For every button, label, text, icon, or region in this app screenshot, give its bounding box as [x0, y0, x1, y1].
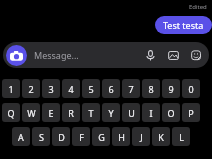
button[interactable]: 8 [142, 79, 160, 98]
button[interactable]: S [32, 127, 50, 146]
button[interactable]: Test testa [155, 16, 212, 34]
button[interactable]: Q [2, 103, 20, 122]
staticText: W [27, 107, 36, 119]
button[interactable]: D [52, 127, 70, 146]
button[interactable]: Voice message [142, 47, 158, 63]
staticText: 2 [28, 83, 34, 95]
staticText: 1 [8, 83, 14, 95]
button[interactable]: O [162, 103, 180, 122]
staticText: D [58, 131, 65, 143]
staticText: 3 [48, 83, 54, 95]
staticText: L [179, 131, 184, 143]
staticText: A [18, 131, 24, 143]
staticText: Q [7, 107, 15, 119]
staticText: P [188, 107, 194, 119]
staticText: 4 [68, 83, 74, 95]
button[interactable]: 2 [22, 79, 40, 98]
button[interactable]: 1 [2, 79, 20, 98]
button[interactable]: P [182, 103, 200, 122]
staticText: 0 [188, 83, 194, 95]
staticText: Edited [189, 3, 207, 11]
button[interactable]: F [72, 127, 90, 146]
button[interactable]: I [142, 103, 160, 122]
button[interactable]: E [42, 103, 60, 122]
staticText: Message... [34, 49, 79, 61]
button[interactable]: Insert image [165, 47, 181, 63]
button[interactable]: G [92, 127, 110, 146]
button[interactable]: L [172, 127, 190, 146]
button[interactable]: 5 [82, 79, 100, 98]
staticText: G [98, 131, 105, 143]
staticText: H [118, 131, 125, 143]
staticText: J [140, 131, 143, 143]
button[interactable]: 4 [62, 79, 80, 98]
button[interactable]: 3 [42, 79, 60, 98]
button[interactable]: 6 [102, 79, 120, 98]
button[interactable]: H [112, 127, 130, 146]
staticText: 6 [108, 83, 114, 95]
staticText: U [128, 107, 135, 119]
staticText: K [158, 131, 164, 143]
button[interactable]: A [12, 127, 30, 146]
button[interactable]: W [22, 103, 40, 122]
staticText: S [39, 131, 44, 143]
staticText: 9 [168, 83, 174, 95]
staticText: T [88, 107, 94, 119]
staticText: Y [108, 107, 114, 119]
button[interactable]: J [132, 127, 150, 146]
staticText: R [68, 107, 74, 119]
button[interactable]: 9 [162, 79, 180, 98]
staticText: E [48, 107, 54, 119]
button[interactable]: R [62, 103, 80, 122]
staticText: 7 [128, 83, 134, 95]
staticText: I [149, 107, 153, 119]
staticText: 5 [88, 83, 94, 95]
button[interactable]: K [152, 127, 170, 146]
staticText: O [167, 107, 175, 119]
button[interactable]: Y [102, 103, 120, 122]
staticText: 8 [148, 83, 154, 95]
button[interactable]: Insert sticker [188, 47, 204, 63]
button[interactable]: 7 [122, 79, 140, 98]
staticText: Test testa [163, 19, 204, 31]
button[interactable]: 0 [182, 79, 200, 98]
button[interactable]: Open camera [6, 45, 27, 66]
staticText: F [79, 131, 84, 143]
button[interactable]: T [82, 103, 100, 122]
button[interactable]: U [122, 103, 140, 122]
